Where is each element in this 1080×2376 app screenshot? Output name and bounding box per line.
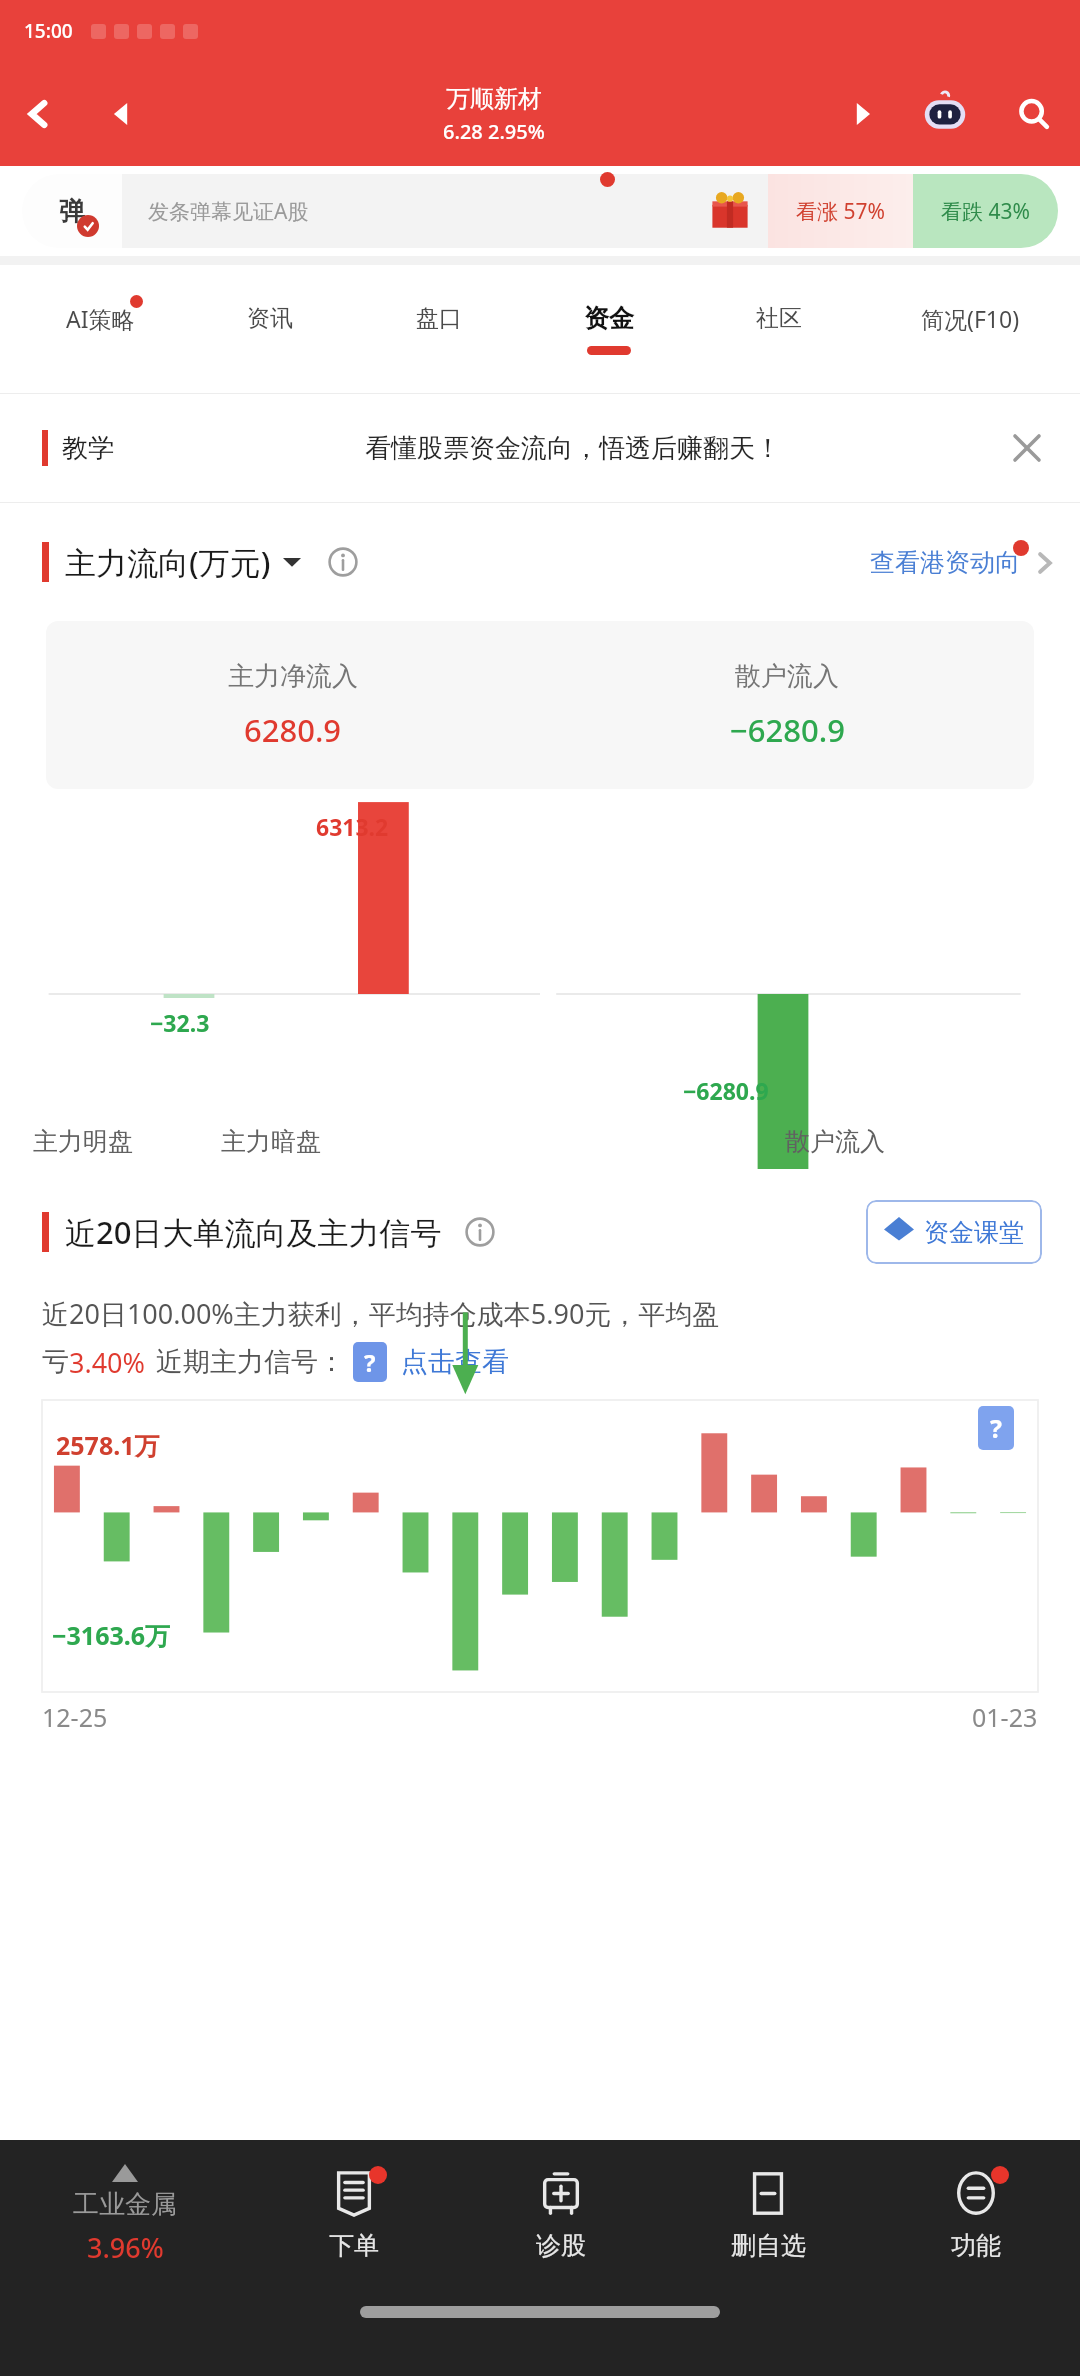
staticText: 资金课堂: [924, 1217, 1024, 1248]
staticText: 删自选: [731, 2230, 806, 2261]
button[interactable]: 主力流向(万元): [65, 541, 301, 583]
staticText: ?: [990, 1411, 1002, 1445]
button[interactable]: 社区: [694, 265, 864, 393]
button[interactable]: 资金课堂: [884, 1200, 1024, 1264]
staticText: −6280.9: [730, 709, 845, 751]
staticText: 资讯: [247, 304, 293, 333]
button[interactable]: 看涨 57%: [768, 174, 1058, 248]
button[interactable]: Previous stock: [78, 62, 164, 166]
button[interactable]: 点击查看: [401, 1345, 509, 1379]
button[interactable]: 弹: [22, 174, 122, 248]
button[interactable]: 盘口: [354, 265, 524, 393]
button[interactable]: 发条弹幕见证A股: [122, 174, 768, 248]
staticText: 诊股: [536, 2230, 586, 2261]
staticText: 工业金属: [73, 2188, 177, 2221]
staticText: 6313.2: [316, 811, 389, 842]
staticText: −3163.6万: [52, 1618, 171, 1652]
staticText: 散户流入: [785, 1126, 885, 1157]
staticText: 主力净流入: [228, 660, 358, 693]
button[interactable]: AI策略: [16, 265, 185, 393]
staticText: 功能: [951, 2230, 1001, 2261]
staticText: 01-23: [972, 1700, 1038, 1734]
staticText: −6280.9: [683, 1075, 769, 1106]
button[interactable]: 下单: [250, 2140, 457, 2290]
staticText: 12-25: [42, 1700, 108, 1734]
staticText: 资金: [584, 303, 634, 334]
button[interactable]: Close: [990, 411, 1064, 485]
staticText: 发条弹幕见证A股: [148, 197, 309, 226]
staticText: 3.40%: [69, 1344, 146, 1381]
staticText: 查看港资动向: [870, 547, 1020, 578]
button[interactable]: Info: [460, 1212, 500, 1252]
staticText: 弹: [59, 195, 85, 228]
button[interactable]: 诊股: [457, 2140, 664, 2290]
button[interactable]: 功能: [872, 2140, 1080, 2290]
staticText: −32.3: [150, 1007, 210, 1038]
staticText: 主力暗盘: [221, 1126, 321, 1157]
button[interactable]: 工业金属: [0, 2140, 250, 2290]
staticText: 看懂股票资金流向，悟透后赚翻天！: [365, 432, 781, 465]
staticText: 万顺新材: [446, 84, 542, 114]
button[interactable]: AI assistant: [902, 62, 988, 166]
staticText: AI策略: [66, 303, 135, 334]
button[interactable]: 简况(F10): [864, 265, 1076, 393]
staticText: 15:00: [24, 18, 73, 44]
button[interactable]: 教学: [0, 394, 1080, 502]
button[interactable]: 资金: [524, 265, 694, 393]
staticText: 6280.9: [244, 709, 342, 751]
staticText: 6.28 2.95%: [443, 118, 545, 145]
staticText: 盘口: [416, 304, 462, 333]
button[interactable]: Next stock: [824, 62, 902, 166]
button[interactable]: 资讯: [185, 265, 354, 393]
staticText: ?: [364, 1346, 376, 1379]
staticText: 近期主力信号：: [156, 1345, 345, 1379]
staticText: 亏: [42, 1345, 69, 1379]
staticText: 2578.1万: [56, 1428, 160, 1462]
button[interactable]: Help: [978, 1406, 1014, 1450]
button[interactable]: ?: [353, 1342, 387, 1382]
staticText: 3.96%: [87, 2229, 164, 2266]
staticText: 社区: [756, 304, 802, 333]
button[interactable]: Back: [0, 62, 78, 166]
staticText: 散户流入: [735, 660, 839, 693]
staticText: 看涨 57%: [796, 197, 885, 226]
staticText: 简况(F10): [921, 303, 1020, 334]
staticText: 看跌 43%: [941, 197, 1030, 226]
button[interactable]: 主力净流入: [46, 621, 1034, 789]
staticText: 主力明盘: [33, 1126, 133, 1157]
staticText: 近20日100.00%主力获利，平均持仓成本5.90元，平均盈: [42, 1295, 720, 1332]
button[interactable]: 查看港资动向: [870, 547, 1080, 578]
staticText: 近20日大单流向及主力信号: [65, 1211, 442, 1253]
staticText: 教学: [62, 432, 114, 465]
button[interactable]: 万顺新材: [164, 84, 824, 145]
staticText: 主力流向(万元): [65, 541, 271, 583]
staticText: 点击查看: [401, 1345, 509, 1379]
button[interactable]: 删自选: [664, 2140, 872, 2290]
button[interactable]: Info: [323, 542, 363, 582]
button[interactable]: Search: [988, 62, 1080, 166]
staticText: 下单: [329, 2230, 379, 2261]
